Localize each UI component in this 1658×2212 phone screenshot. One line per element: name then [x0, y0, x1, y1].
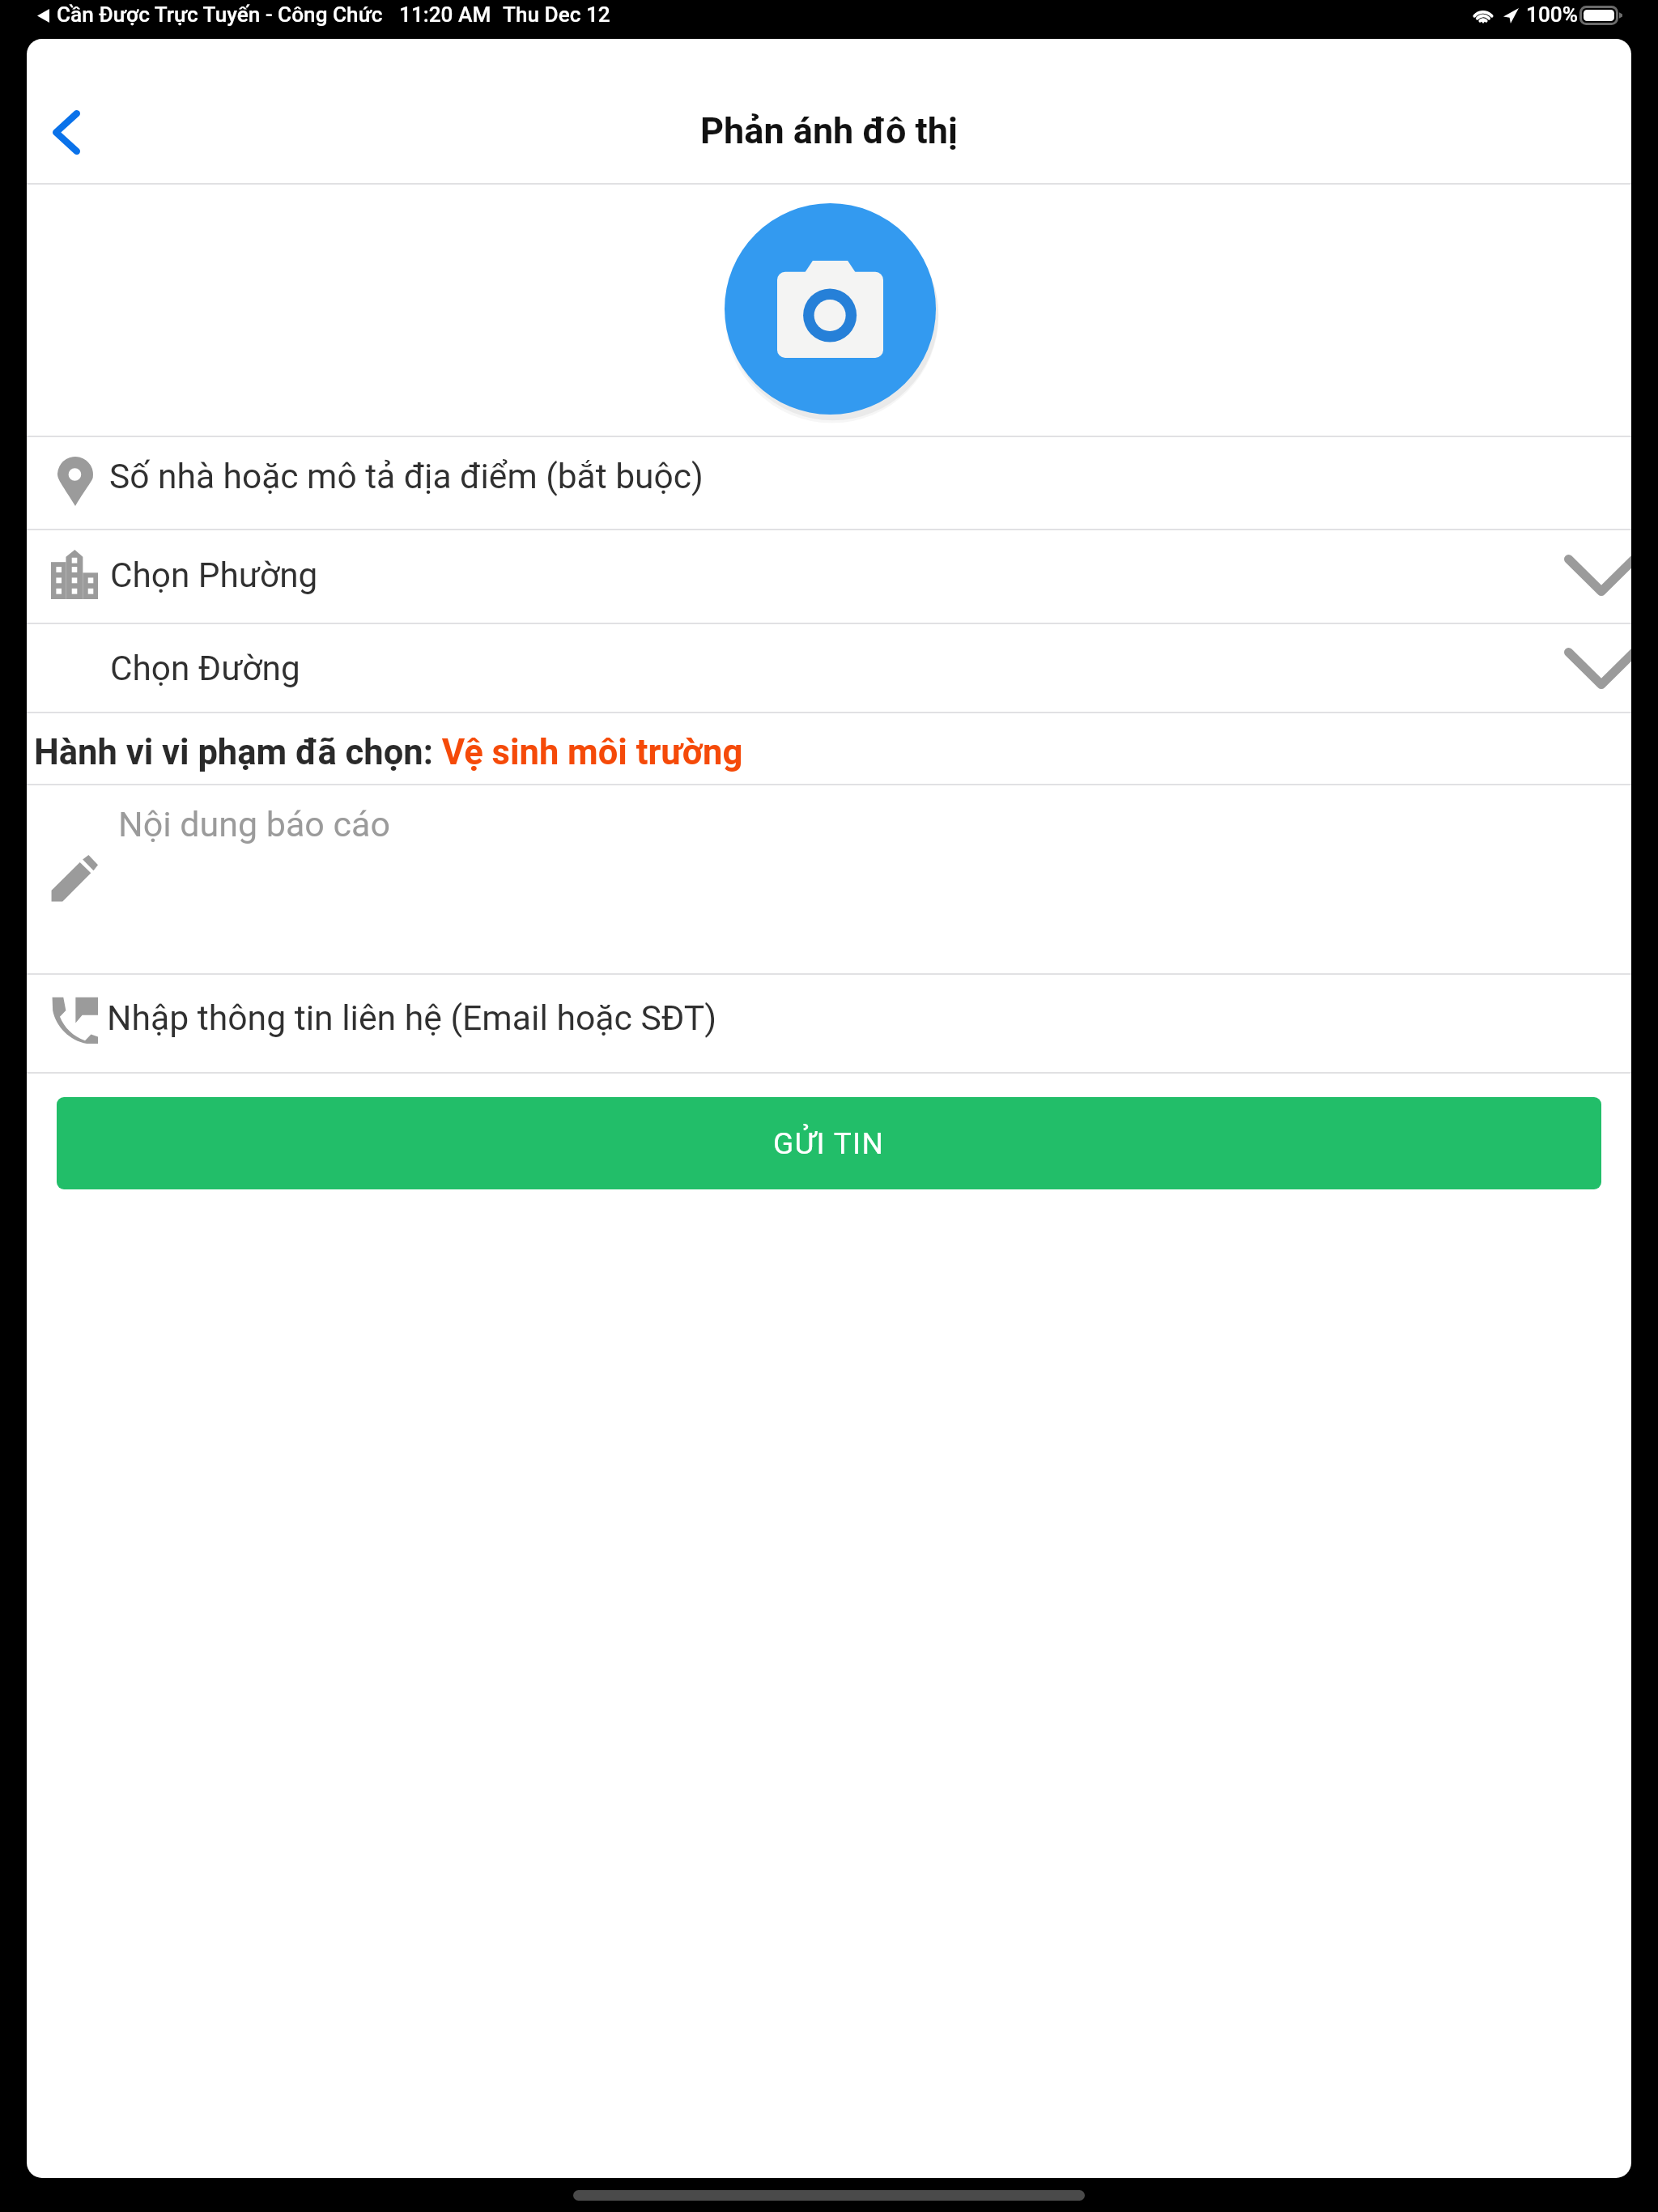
staticText: GỬI TIN: [773, 1126, 885, 1161]
staticText: Hành vi vi phạm đã chọn: Vệ sinh môi trư…: [34, 732, 743, 773]
staticText: Chọn Phường: [110, 555, 318, 596]
button[interactable]: Take photo: [725, 203, 936, 422]
button[interactable]: Hành vi vi phạm đã chọn: Vệ sinh môi trư…: [27, 713, 1631, 784]
staticText: Chọn Đường: [110, 649, 300, 689]
staticText: Phản ánh đô thị: [700, 109, 958, 152]
button[interactable]: GỬI TIN: [57, 1097, 1601, 1189]
staticText: Thu Dec 12: [503, 2, 610, 28]
button[interactable]: Số nhà hoặc mô tả địa điểm (bắt buộc): [27, 437, 1631, 529]
staticText: 100%: [1526, 2, 1578, 28]
button[interactable]: Chọn Đường: [27, 624, 1631, 712]
button[interactable]: Chọn Phường: [27, 530, 1631, 623]
staticText: Nội dung báo cáo: [118, 804, 390, 844]
staticText: Số nhà hoặc mô tả địa điểm (bắt buộc): [109, 457, 704, 497]
button[interactable]: Nhập thông tin liên hệ (Email hoặc SĐT): [27, 975, 1631, 1072]
staticText: 11:20 AM: [399, 2, 491, 28]
staticText: Nhập thông tin liên hệ (Email hoặc SĐT): [107, 998, 717, 1038]
staticText: Cần Được Trực Tuyến - Công Chức: [57, 2, 383, 28]
button[interactable]: Nội dung báo cáo: [27, 785, 1631, 973]
button[interactable]: Back: [27, 77, 115, 187]
